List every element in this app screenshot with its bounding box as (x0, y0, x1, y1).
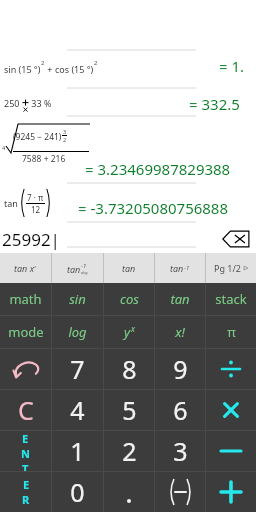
staticText: 1 (70, 434, 85, 468)
button[interactable]: mode (0, 316, 51, 348)
staticText: tan (122, 262, 136, 274)
staticText: + (45, 63, 55, 75)
staticText: cos (15 °) (55, 63, 94, 75)
staticText: tan x (14, 262, 34, 274)
staticText: E (22, 431, 29, 446)
staticText: -1 (184, 264, 190, 272)
button[interactable]: tan (52, 253, 103, 283)
staticText: -1 (81, 262, 87, 270)
staticText: cos (120, 290, 139, 308)
button[interactable]: log (52, 316, 103, 348)
button[interactable]: Divide (206, 349, 256, 389)
staticText: 25992| (2, 228, 60, 251)
staticText: 2 (94, 59, 98, 67)
button[interactable]: x! (155, 316, 205, 348)
staticText: stack (215, 290, 247, 308)
button[interactable]: math (0, 283, 51, 315)
staticText: log (68, 323, 87, 341)
staticText: 3 (173, 434, 188, 468)
staticText: ° (34, 264, 37, 272)
button[interactable]: Undo (0, 349, 51, 389)
staticText: 4 (2, 144, 6, 151)
staticText: N (21, 446, 30, 461)
staticText: = 1. (219, 56, 245, 76)
staticText: 3 (63, 128, 67, 135)
staticText: sin (15 °) (4, 63, 41, 75)
button[interactable]: 0 (52, 472, 103, 512)
staticText: 5 (122, 393, 137, 427)
button[interactable]: Enter (0, 472, 51, 512)
staticText: 2 (63, 136, 67, 143)
staticText: tan (4, 197, 18, 209)
button[interactable]: 4 (52, 390, 103, 430)
button[interactable]: Add (206, 472, 256, 512)
staticText: 250 (4, 97, 22, 109)
staticText: 12 (31, 204, 41, 215)
staticText: 7 (70, 352, 85, 386)
button[interactable]: Backspace (222, 230, 250, 248)
button[interactable]: y (104, 316, 154, 348)
button[interactable]: Subtract (206, 431, 256, 471)
staticText: T (22, 461, 29, 471)
staticText: 9 (173, 352, 188, 386)
button[interactable]: π (206, 316, 256, 348)
button[interactable]: C (0, 390, 51, 430)
button[interactable]: tan (155, 253, 205, 283)
staticText: y (124, 323, 131, 341)
button[interactable]: Enter (0, 431, 51, 471)
button[interactable]: sin (52, 283, 103, 315)
button[interactable]: 8 (104, 349, 154, 389)
staticText: 7 · π (27, 192, 44, 203)
staticText: tan (170, 290, 190, 308)
staticText: deg (81, 270, 88, 275)
staticText: π (227, 323, 236, 341)
staticText: = 3.23469987829388 (85, 159, 231, 179)
button[interactable]: 6 (155, 390, 205, 430)
button[interactable]: 5 (104, 390, 154, 430)
staticText: = 332.5 (189, 94, 240, 114)
staticText: Pg 1/2 (214, 262, 241, 274)
button[interactable]: tan (104, 253, 154, 283)
button[interactable]: stack (206, 283, 256, 315)
staticText: 8 (122, 352, 137, 386)
button[interactable]: Negate (155, 472, 205, 512)
staticText: 4 (70, 393, 85, 427)
button[interactable]: Pg 1/2 (206, 253, 256, 283)
staticText: tan (67, 263, 81, 275)
staticText: x (131, 323, 135, 334)
staticText: x! (175, 323, 185, 341)
button[interactable]: tan (155, 283, 205, 315)
staticText: 7588 + 216 (22, 153, 66, 165)
staticText: 6 (173, 393, 188, 427)
staticText: 2 (41, 59, 45, 67)
staticText: math (9, 290, 42, 308)
staticText: R (22, 492, 30, 507)
staticText: 0 (70, 475, 85, 509)
staticText: = -3.73205080756888 (78, 198, 229, 218)
button[interactable]: 9 (155, 349, 205, 389)
button[interactable]: 7 (52, 349, 103, 389)
staticText: 33 % (29, 97, 52, 109)
button[interactable]: tan x (0, 253, 51, 283)
button[interactable]: 2 (104, 431, 154, 471)
staticText: tan (170, 262, 184, 274)
staticText: C (18, 393, 34, 427)
button[interactable]: 3 (155, 431, 205, 471)
button[interactable]: cos (104, 283, 154, 315)
staticText: 2 (122, 434, 137, 468)
button[interactable]: 1 (52, 431, 103, 471)
staticText: mode (8, 323, 44, 341)
staticText: sin (69, 290, 86, 308)
staticText: (9245 − 241) (13, 131, 62, 143)
staticText: E (23, 477, 30, 492)
button[interactable]: Multiply (206, 390, 256, 430)
button[interactable]: Decimal point (104, 472, 154, 512)
